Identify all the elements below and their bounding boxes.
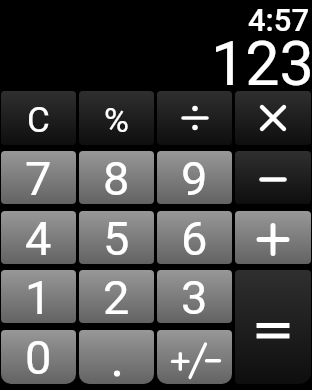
staticText: 7 [25,151,52,204]
button[interactable] [157,91,232,145]
button[interactable] [235,151,311,204]
staticText: 4:57 [248,2,310,38]
button[interactable] [79,330,154,384]
button[interactable] [235,211,311,264]
button[interactable]: 9 [157,151,232,204]
button[interactable]: 3 [157,270,232,323]
button[interactable]: % [79,91,154,145]
button[interactable]: 0 [1,330,76,384]
staticText: 0 [25,330,52,384]
button[interactable]: 6 [157,211,232,264]
staticText: C [27,100,50,141]
staticText: % [104,100,129,140]
button[interactable] [235,270,311,384]
button[interactable]: C [1,91,76,145]
button[interactable]: 7 [1,151,76,204]
button[interactable]: 8 [79,151,154,204]
staticText: 8 [103,151,130,204]
button[interactable] [157,330,232,384]
staticText: 5 [103,211,130,264]
button[interactable]: 1 [1,270,76,323]
button[interactable]: 4 [1,211,76,264]
staticText: 6 [181,211,208,264]
button[interactable] [235,91,311,145]
staticText: 9 [181,151,208,204]
staticText: 4 [25,211,52,264]
staticText: 2 [103,270,130,323]
staticText: 123 [211,28,312,99]
button[interactable]: 2 [79,270,154,323]
button[interactable]: 5 [79,211,154,264]
staticText: 1 [25,270,52,323]
staticText: 3 [181,270,208,323]
